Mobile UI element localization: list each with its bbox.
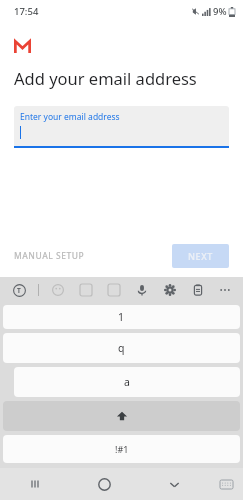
staticText: Enter your email address	[20, 111, 120, 123]
staticText: !#1	[115, 443, 129, 455]
button[interactable]: NEXT	[172, 244, 229, 268]
staticText: 17:54	[14, 5, 39, 18]
button[interactable]: Shift	[3, 401, 240, 431]
button[interactable]: Hide keyboard	[139, 468, 209, 500]
staticText: MANUAL SETUP	[14, 250, 85, 262]
button[interactable]: MANUAL SETUP	[14, 244, 85, 268]
button[interactable]: 1	[3, 305, 240, 329]
button[interactable]: Enter your email address	[14, 106, 229, 146]
button[interactable]: More options	[217, 282, 233, 298]
button[interactable]: Settings	[161, 281, 179, 299]
staticText: 9%	[213, 5, 227, 18]
staticText: a	[124, 375, 130, 389]
button[interactable]: Keyboard	[209, 468, 243, 500]
button[interactable]: Translate	[10, 281, 28, 299]
staticText: T	[17, 286, 21, 295]
staticText: 1	[118, 310, 125, 324]
button[interactable]: Home	[69, 468, 139, 500]
button[interactable]: a	[14, 367, 240, 397]
button[interactable]: !#1	[3, 435, 240, 463]
button[interactable]: GIF	[105, 281, 123, 299]
staticText: NEXT	[188, 250, 213, 262]
button[interactable]: Stickers	[77, 281, 95, 299]
button[interactable]: Clipboard	[189, 281, 207, 299]
button[interactable]: q	[3, 333, 240, 363]
button[interactable]: Voice input	[133, 281, 151, 299]
button[interactable]: Emoji	[49, 281, 67, 299]
button[interactable]: Recent apps	[0, 468, 69, 500]
staticText: q	[118, 341, 125, 355]
staticText: Add your email address	[14, 67, 197, 89]
